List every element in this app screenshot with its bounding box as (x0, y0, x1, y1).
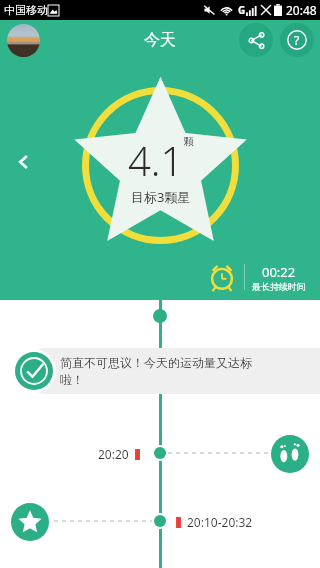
button[interactable]: Help (280, 23, 314, 57)
staticText: 00:22 (262, 263, 296, 281)
button[interactable]: Achievement (15, 352, 53, 390)
staticText: 20:48 (286, 2, 317, 18)
staticText: 今天 (144, 30, 176, 50)
staticText: ? (294, 32, 300, 48)
button[interactable]: Star earned (11, 503, 49, 541)
button[interactable]: Steps (271, 435, 309, 473)
staticText: 简直不可思议！今天的运动量又达标 啦！ (60, 355, 252, 387)
staticText: 4.1 (128, 133, 184, 187)
staticText: G (238, 3, 246, 17)
button[interactable]: Share (239, 23, 273, 57)
staticText: 中国移动 (4, 3, 48, 17)
button[interactable]: 4.1 (82, 87, 239, 244)
staticText: 最长持续时间 (252, 281, 306, 292)
button[interactable]: 00:22 (207, 262, 306, 292)
staticText: 目标3颗星 (131, 188, 191, 206)
button[interactable]: Profile (7, 24, 40, 57)
staticText: 颗 (184, 135, 194, 148)
staticText: 20:10-20:32 (187, 514, 253, 530)
button[interactable]: 简直不可思议！今天的运动量又达标 啦！ (22, 348, 320, 394)
staticText: 20:20 (98, 446, 129, 462)
button[interactable]: Back (8, 146, 40, 178)
